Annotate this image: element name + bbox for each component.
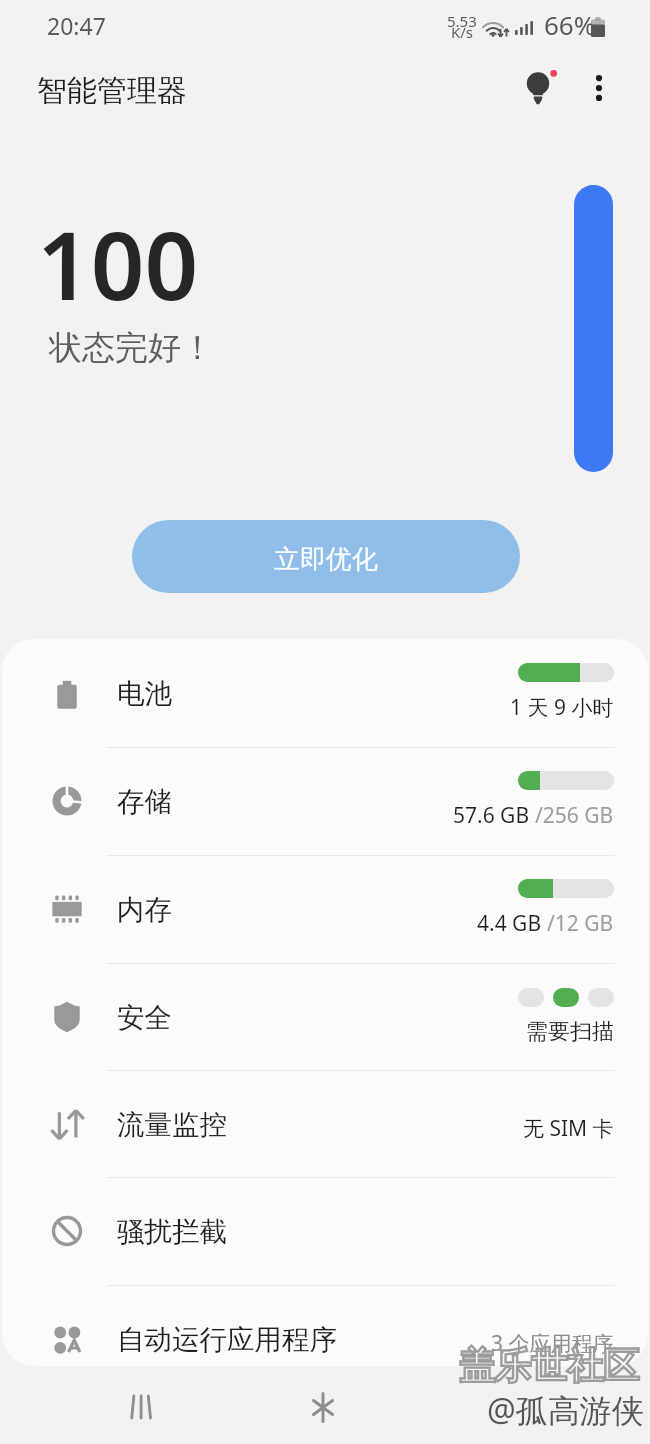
staticText: 1 天 9 小时	[510, 693, 614, 722]
staticText: 100	[37, 200, 199, 328]
staticText: /256 GB	[535, 801, 614, 830]
staticText: 66%	[544, 7, 596, 42]
staticText: 安全	[117, 1001, 172, 1036]
staticText: 无 SIM 卡	[523, 1114, 614, 1143]
staticText: /12 GB	[547, 909, 614, 938]
staticText: 自动运行应用程序	[117, 1323, 337, 1358]
staticText: 3 个应用程序	[491, 1329, 614, 1358]
staticText: 状态完好！	[49, 327, 214, 369]
button[interactable]: 立即优化	[132, 520, 520, 593]
button[interactable]: 内存	[2, 855, 648, 962]
staticText: K/s	[451, 22, 474, 42]
staticText: 存储	[117, 785, 172, 820]
staticText: 立即优化	[274, 543, 378, 576]
staticText: 电池	[117, 677, 172, 712]
staticText: 盖乐世社区	[459, 1343, 639, 1388]
button[interactable]: 电池	[2, 639, 648, 746]
staticText: 内存	[117, 893, 172, 928]
staticText: 骚扰拦截	[117, 1215, 227, 1250]
staticText: 4.4 GB	[477, 909, 547, 938]
staticText: @孤高游侠	[487, 1388, 644, 1432]
button[interactable]: Back	[470, 1370, 580, 1444]
button[interactable]: Recents	[106, 1370, 236, 1444]
button[interactable]: 骚扰拦截	[2, 1177, 648, 1284]
button[interactable]: More options	[567, 56, 631, 120]
button[interactable]: 自动运行应用程序	[2, 1285, 648, 1366]
button[interactable]: 流量监控	[2, 1070, 648, 1177]
staticText: 20:47	[47, 10, 106, 41]
button[interactable]: Tips	[508, 58, 572, 122]
staticText: 5.53	[447, 11, 477, 31]
staticText: 需要扫描	[526, 1018, 614, 1046]
staticText: 57.6 GB	[453, 801, 535, 830]
staticText: 智能管理器	[37, 72, 187, 110]
staticText: 流量监控	[117, 1108, 227, 1143]
button[interactable]: Home	[288, 1370, 358, 1444]
button[interactable]: 安全	[2, 963, 648, 1070]
button[interactable]: 存储	[2, 747, 648, 854]
